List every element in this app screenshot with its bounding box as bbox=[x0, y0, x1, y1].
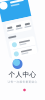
staticText: 让每一次服务都更贴心 bbox=[7, 80, 37, 83]
staticText: 个人中心 bbox=[8, 70, 36, 79]
